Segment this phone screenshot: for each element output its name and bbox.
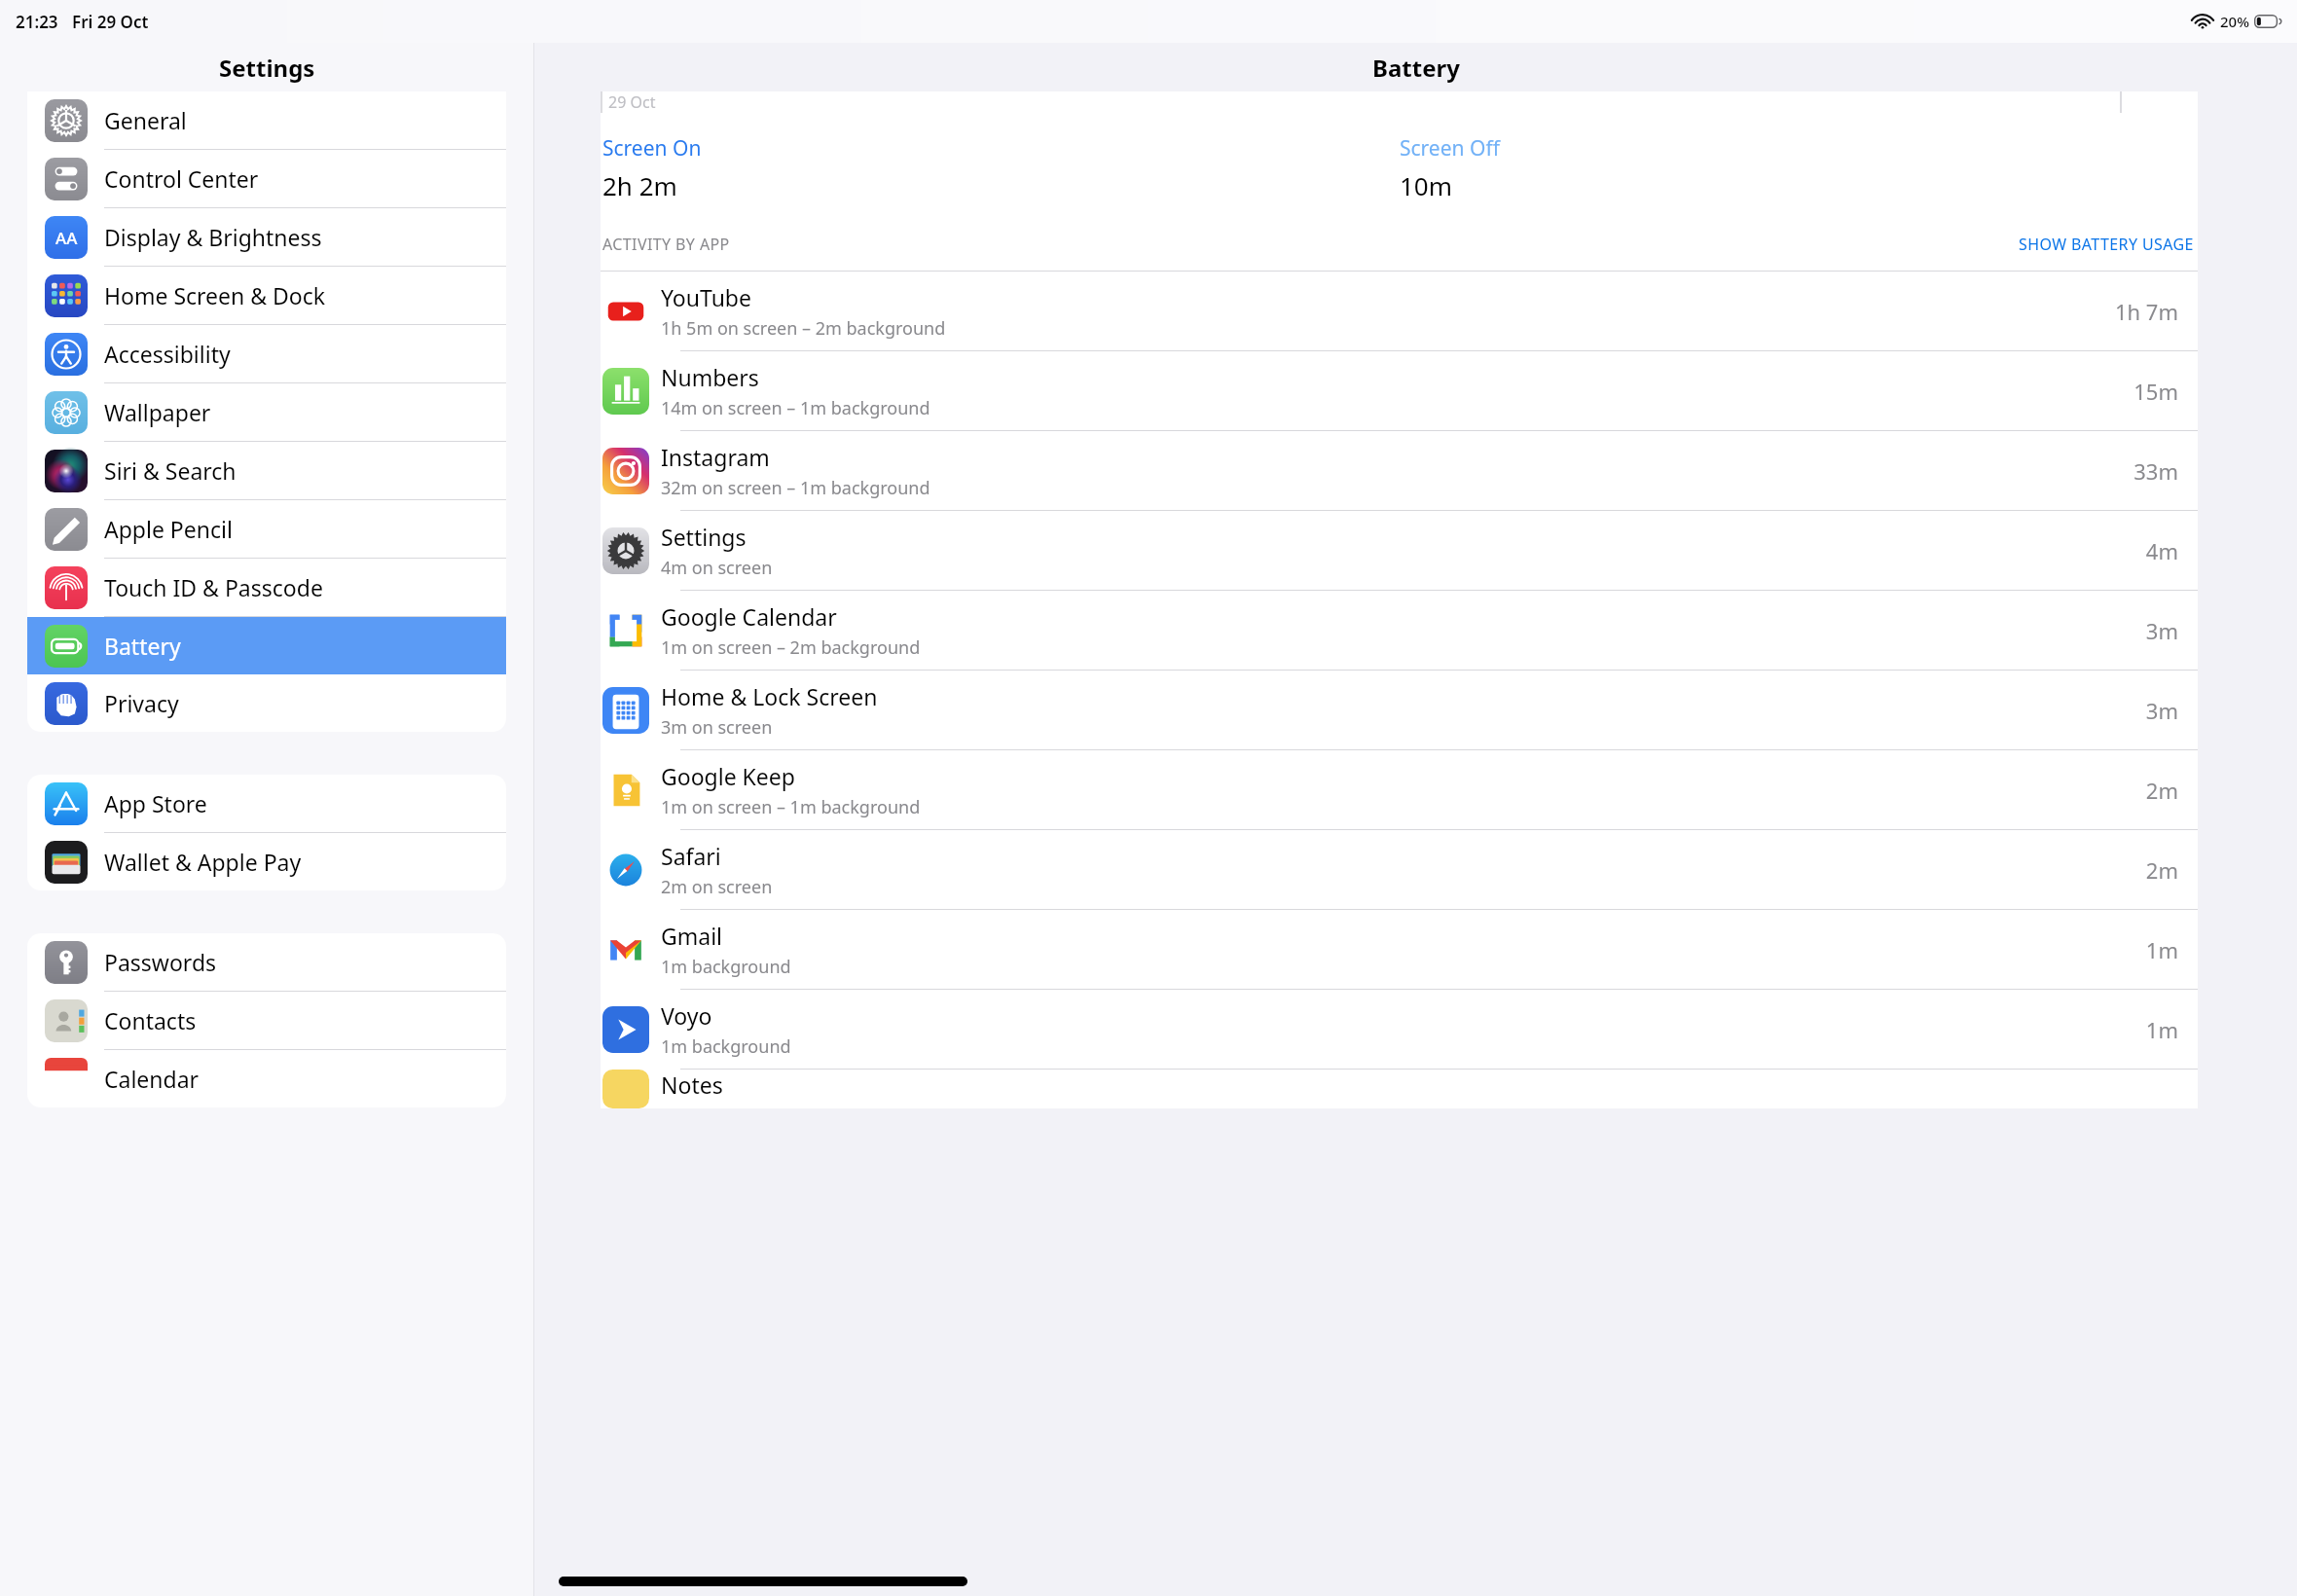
button[interactable]: Notes — [601, 1070, 2198, 1108]
button[interactable]: Control Center — [27, 150, 506, 207]
staticText: 10m — [1400, 168, 1453, 202]
staticText: Instagram — [661, 442, 770, 472]
staticText: Wallpaper — [104, 397, 211, 427]
staticText: Control Center — [104, 163, 259, 194]
button[interactable]: Numbers — [601, 351, 2198, 430]
staticText: Gmail — [661, 921, 723, 951]
staticText: Privacy — [104, 688, 179, 718]
button[interactable]: Google Keep — [601, 750, 2198, 829]
staticText: 29 Oct — [608, 91, 656, 113]
staticText: General — [104, 105, 187, 135]
button[interactable]: Home Screen & Dock — [27, 267, 506, 324]
button[interactable]: Wallpaper — [27, 383, 506, 441]
button[interactable]: Contacts — [27, 992, 506, 1049]
button[interactable]: Google Calendar — [601, 591, 2198, 670]
staticText: 15m — [2133, 377, 2178, 406]
staticText: 2m — [2145, 855, 2178, 885]
staticText: Contacts — [104, 1005, 197, 1035]
staticText: Numbers — [661, 362, 759, 392]
staticText: 1m on screen – 1m background — [661, 795, 921, 819]
button[interactable]: Voyo — [601, 990, 2198, 1069]
staticText: Notes — [661, 1070, 723, 1100]
staticText: Screen Off — [1400, 134, 1500, 163]
button[interactable]: Accessibility — [27, 325, 506, 382]
staticText: Settings — [219, 52, 315, 84]
staticText: Passwords — [104, 947, 217, 977]
staticText: 2m — [2145, 776, 2178, 805]
staticText: Calendar — [104, 1064, 200, 1094]
staticText: 3m on screen — [661, 715, 773, 740]
staticText: 4m on screen — [661, 556, 773, 580]
staticText: Battery — [104, 631, 181, 661]
button[interactable]: YouTube — [601, 272, 2198, 350]
staticText: Google Calendar — [661, 601, 837, 632]
staticText: 1m on screen – 2m background — [661, 635, 921, 660]
staticText: Screen On — [602, 134, 702, 163]
staticText: 1m background — [661, 1034, 791, 1059]
staticText: 14m on screen – 1m background — [661, 396, 930, 420]
staticText: ACTIVITY BY APP — [602, 234, 730, 255]
button[interactable]: SHOW BATTERY USAGE — [2015, 230, 2198, 259]
button[interactable]: App Store — [27, 775, 506, 832]
staticText: Display & Brightness — [104, 222, 322, 252]
staticText: Touch ID & Passcode — [104, 572, 323, 602]
staticText: 21:23 — [16, 11, 58, 33]
button[interactable]: Battery — [27, 617, 506, 674]
button[interactable]: Gmail — [601, 910, 2198, 989]
button[interactable]: Instagram — [601, 431, 2198, 510]
staticText: 1m — [2145, 1015, 2178, 1044]
button[interactable]: Home & Lock Screen — [601, 671, 2198, 749]
staticText: 2m on screen — [661, 875, 773, 899]
button[interactable]: Privacy — [27, 674, 506, 732]
staticText: App Store — [104, 788, 207, 818]
button[interactable]: AA — [27, 208, 506, 266]
staticText: 33m — [2133, 456, 2178, 486]
button[interactable]: Apple Pencil — [27, 500, 506, 558]
button[interactable]: Touch ID & Passcode — [27, 559, 506, 616]
staticText: Apple Pencil — [104, 514, 233, 544]
button[interactable]: Wallet & Apple Pay — [27, 833, 506, 890]
staticText: Safari — [661, 841, 721, 871]
staticText: Fri 29 Oct — [72, 11, 149, 33]
staticText: Voyo — [661, 1000, 712, 1031]
staticText: 1h 7m — [2114, 297, 2178, 326]
button[interactable]: Safari — [601, 830, 2198, 909]
staticText: 1m — [2145, 935, 2178, 964]
staticText: YouTube — [661, 282, 751, 312]
button[interactable]: Passwords — [27, 933, 506, 991]
button[interactable]: Calendar — [27, 1050, 506, 1107]
staticText: 1m background — [661, 955, 791, 979]
staticText: Home & Lock Screen — [661, 681, 878, 711]
staticText: Google Keep — [661, 761, 795, 791]
staticText: 32m on screen – 1m background — [661, 476, 930, 500]
button[interactable]: Settings — [601, 511, 2198, 590]
staticText: 1h 5m on screen – 2m background — [661, 316, 946, 341]
button[interactable]: Siri & Search — [27, 442, 506, 499]
staticText: 2h 2m — [602, 168, 677, 202]
staticText: Home Screen & Dock — [104, 280, 326, 310]
staticText: SHOW BATTERY USAGE — [2019, 234, 2194, 255]
staticText: 20% — [2220, 12, 2249, 31]
staticText: 4m — [2145, 536, 2178, 565]
staticText: Battery — [1372, 52, 1460, 84]
staticText: Settings — [661, 522, 747, 552]
staticText: 3m — [2145, 616, 2178, 645]
staticText: Wallet & Apple Pay — [104, 847, 302, 877]
staticText: 3m — [2145, 696, 2178, 725]
staticText: Siri & Search — [104, 455, 237, 486]
staticText: AA — [55, 227, 78, 249]
staticText: Accessibility — [104, 339, 231, 369]
button[interactable]: General — [27, 91, 506, 149]
